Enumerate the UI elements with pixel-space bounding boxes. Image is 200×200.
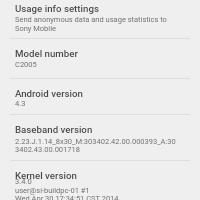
staticText: 4.3 [15, 99, 26, 108]
staticText: Android version [15, 88, 83, 99]
staticText: 3402.43.00.001718 [15, 145, 80, 154]
staticText: 2.23.J.1.14_8x30_M:303402.42.00.000393_A… [15, 137, 176, 146]
staticText: Send anonymous data and usage statistics… [15, 15, 167, 24]
staticText: Model number [15, 48, 78, 59]
staticText: Usage info settings [15, 3, 99, 14]
button[interactable] [0, 161, 200, 200]
staticText: 3.4.0 [15, 177, 32, 186]
staticText: user@si-buildpc-01 #1 [15, 186, 90, 195]
staticText: Kernel version [15, 170, 77, 181]
button[interactable] [0, 39, 200, 78]
button[interactable] [0, 115, 200, 160]
button[interactable] [0, 79, 200, 114]
staticText: Baseband version [15, 124, 93, 135]
staticText: Wed Apr 30 17:34:51 CST 2014 [15, 194, 119, 200]
staticText: C2005 [15, 60, 37, 69]
button[interactable] [0, 0, 200, 38]
staticText: Sony Mobile [15, 24, 56, 33]
